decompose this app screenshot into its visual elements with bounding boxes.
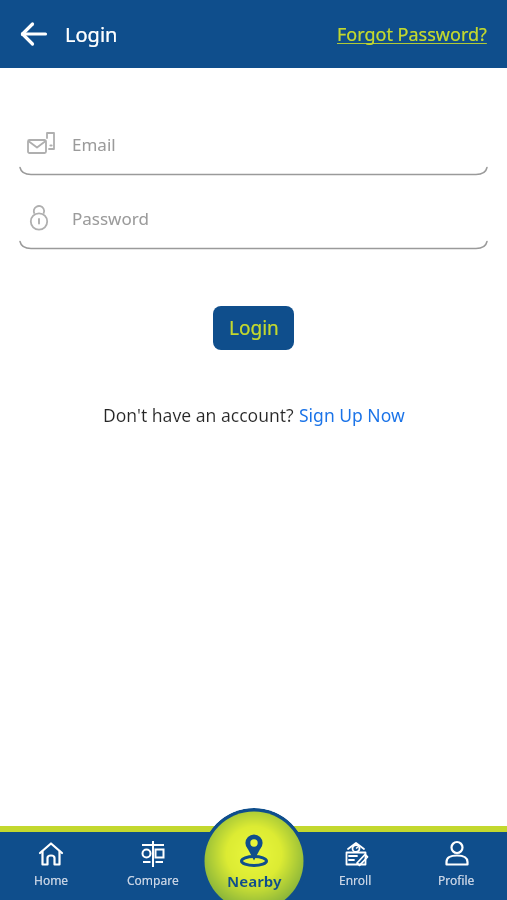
- button[interactable]: Home: [0, 832, 102, 900]
- staticText: Login: [229, 315, 279, 341]
- staticText: Login: [65, 21, 118, 48]
- button[interactable]: Login: [213, 306, 294, 350]
- button[interactable]: Forgot Password?: [337, 22, 507, 47]
- button[interactable]: Nearby: [201, 808, 307, 900]
- staticText: Nearby: [227, 871, 282, 891]
- staticText: Don't have an account?: [103, 403, 299, 427]
- button[interactable]: Password: [19, 186, 488, 250]
- staticText: Profile: [438, 872, 475, 888]
- staticText: Compare: [127, 872, 179, 888]
- staticText: Email: [72, 133, 116, 156]
- button[interactable]: Enroll: [305, 832, 406, 900]
- staticText: Home: [34, 872, 69, 888]
- button[interactable]: Email: [19, 112, 488, 176]
- staticText: Enroll: [339, 872, 372, 888]
- button[interactable]: Sign Up Now: [299, 403, 405, 427]
- button[interactable]: [9, 9, 59, 59]
- button[interactable]: Profile: [406, 832, 507, 900]
- staticText: Password: [72, 207, 149, 230]
- button[interactable]: Compare: [102, 832, 204, 900]
